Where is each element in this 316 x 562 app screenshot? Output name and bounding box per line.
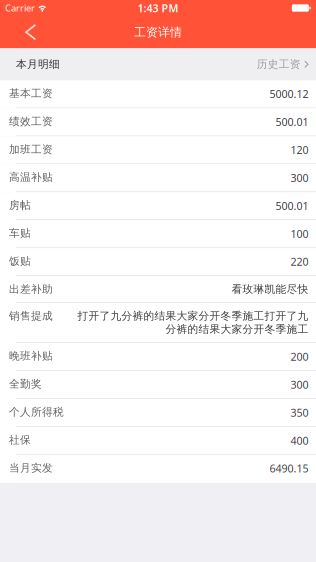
button[interactable]: 车贴	[0, 220, 316, 248]
staticText: 基本工资	[9, 87, 53, 100]
staticText: 300	[290, 377, 308, 392]
button[interactable]: 销售提成	[0, 303, 316, 343]
staticText: 打开了九分裤的结果大家分开冬季施工打开了九分裤的结果大家分开冬季施工	[77, 309, 308, 336]
button[interactable]: 饭贴	[0, 248, 316, 276]
staticText: 出差补助	[9, 283, 53, 296]
staticText: 500.01	[275, 115, 308, 129]
staticText: 6490.15	[269, 461, 308, 476]
staticText: 工资详情	[134, 25, 182, 39]
staticText: 加班工资	[9, 143, 53, 156]
staticText: 车贴	[9, 227, 31, 240]
staticText: 看玫琳凯能尽快	[231, 283, 308, 296]
button[interactable]: 基本工资	[0, 80, 316, 108]
staticText: 饭贴	[9, 255, 31, 268]
staticText: 300	[290, 171, 308, 185]
button[interactable]: 社保	[0, 427, 316, 455]
staticText: 全勤奖	[9, 377, 42, 391]
staticText: 销售提成	[9, 309, 53, 323]
staticText: 1:43 PM	[137, 1, 178, 15]
staticText: 当月实发	[9, 461, 53, 474]
staticText: Carrier	[5, 2, 35, 14]
staticText: 350	[290, 405, 308, 420]
staticText: 个人所得税	[9, 405, 64, 419]
staticText: 400	[290, 433, 308, 448]
button[interactable]: 绩效工资	[0, 108, 316, 136]
staticText: 晚班补贴	[9, 349, 53, 363]
button[interactable]: 加班工资	[0, 136, 316, 164]
staticText: 200	[290, 349, 308, 364]
staticText: 绩效工资	[9, 115, 53, 128]
staticText: 220	[290, 255, 308, 269]
staticText: 500.01	[275, 199, 308, 213]
button[interactable]: 晚班补贴	[0, 343, 316, 371]
button[interactable]: 个人所得税	[0, 399, 316, 427]
staticText: 本月明细	[16, 58, 60, 71]
button[interactable]: Back	[0, 16, 47, 48]
staticText: 5000.12	[269, 87, 308, 101]
button[interactable]: 出差补助	[0, 276, 316, 303]
button[interactable]: 房帖	[0, 192, 316, 220]
staticText: 历史工资	[257, 58, 301, 71]
button[interactable]: 历史工资	[257, 52, 316, 77]
button[interactable]: 全勤奖	[0, 371, 316, 399]
staticText: 房帖	[9, 199, 31, 212]
button[interactable]: 高温补贴	[0, 164, 316, 192]
staticText: 120	[290, 143, 308, 157]
button[interactable]: 当月实发	[0, 455, 316, 483]
staticText: 高温补贴	[9, 171, 53, 184]
staticText: 社保	[9, 433, 31, 446]
staticText: 100	[290, 227, 308, 241]
